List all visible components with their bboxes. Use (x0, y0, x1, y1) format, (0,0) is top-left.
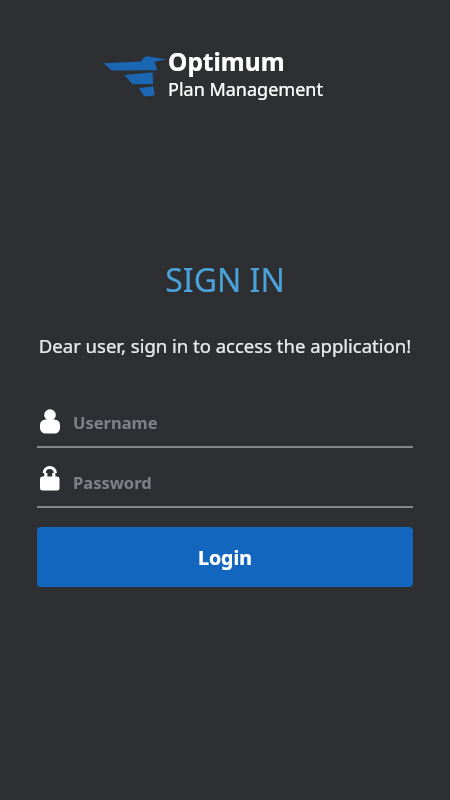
button[interactable]: Username (37, 400, 413, 447)
staticText: Optimum (168, 45, 285, 78)
button[interactable]: Password (37, 460, 413, 507)
staticText: Password (73, 471, 152, 493)
staticText: Plan Management (168, 77, 323, 102)
staticText: Dear user, sign in to access the applica… (0, 333, 450, 358)
staticText: Username (73, 411, 158, 433)
button[interactable]: Login (37, 527, 413, 587)
staticText: Login (198, 544, 252, 571)
staticText: SIGN IN (0, 258, 450, 302)
